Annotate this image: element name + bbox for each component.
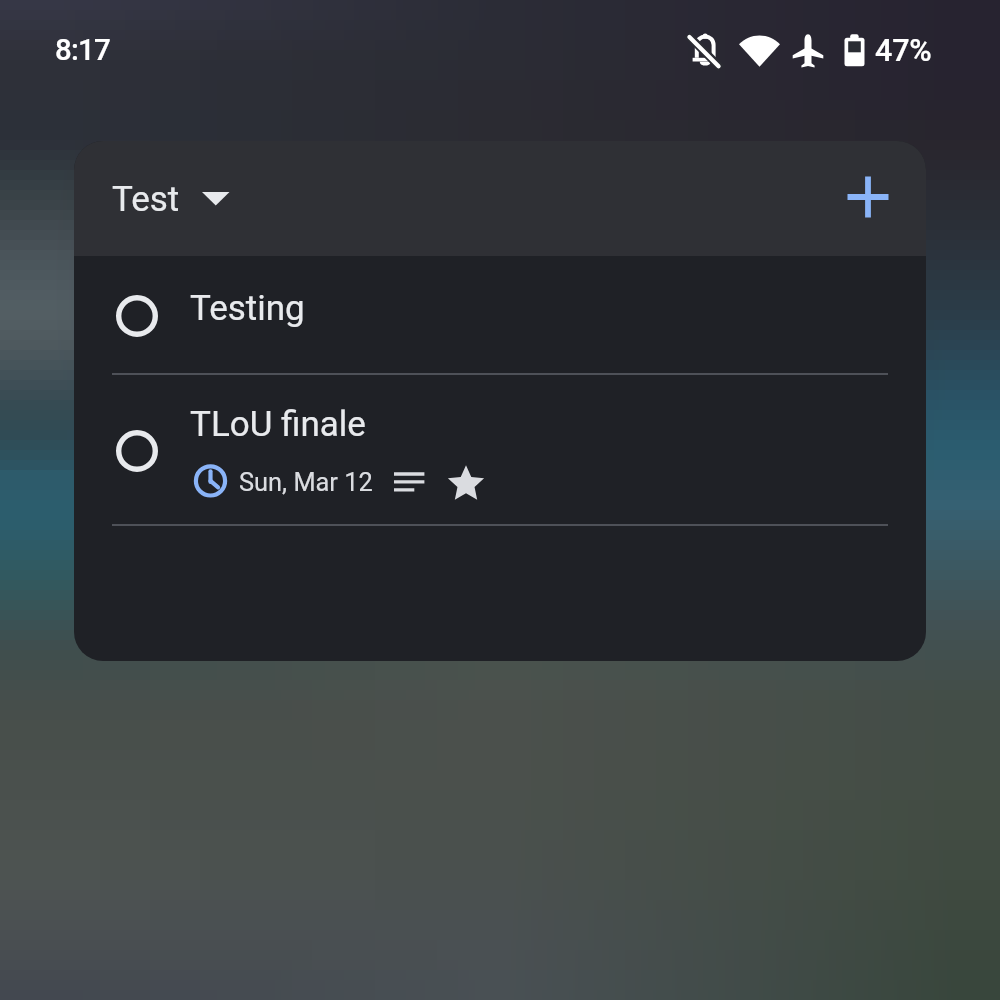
staticText: 8:17 — [55, 33, 110, 68]
button[interactable]: Add task — [839, 168, 897, 226]
staticText: 47% — [875, 33, 932, 69]
button[interactable]: Mark complete — [113, 427, 161, 475]
staticText: Testing — [190, 288, 305, 329]
button[interactable]: Mark complete — [74, 375, 926, 526]
button[interactable]: Mark complete — [113, 292, 161, 340]
staticText: Test — [112, 179, 180, 220]
button[interactable]: Mark complete — [74, 256, 926, 375]
button[interactable]: Test — [104, 161, 279, 236]
staticText: TLoU finale — [190, 404, 366, 445]
staticText: Sun, Mar 12 — [239, 467, 373, 497]
